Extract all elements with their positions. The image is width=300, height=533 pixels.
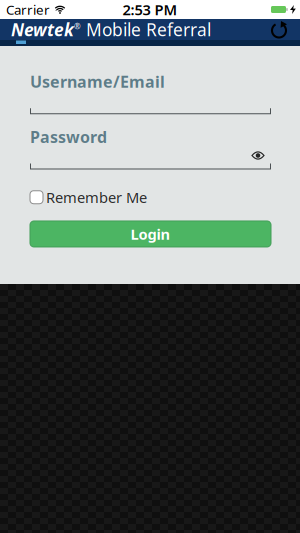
button[interactable]: Show password [252, 151, 300, 159]
staticText: Password [30, 126, 107, 147]
staticText: Remember Me [46, 187, 147, 207]
staticText: Mobile Referral [81, 18, 211, 41]
button[interactable]: Login [30, 221, 271, 247]
staticText: Carrier [6, 1, 50, 18]
staticText: Newtek [11, 18, 74, 41]
staticText: Login [130, 224, 170, 244]
staticText: Username/Email [30, 71, 165, 92]
button[interactable]: Refresh [270, 20, 300, 39]
button[interactable]: Username/Email field [30, 92, 271, 114]
staticText: 2:53 PM [122, 0, 177, 19]
button[interactable]: Remember Me [30, 187, 147, 207]
staticText: ® [74, 21, 81, 32]
button[interactable]: Password field [30, 159, 271, 169]
